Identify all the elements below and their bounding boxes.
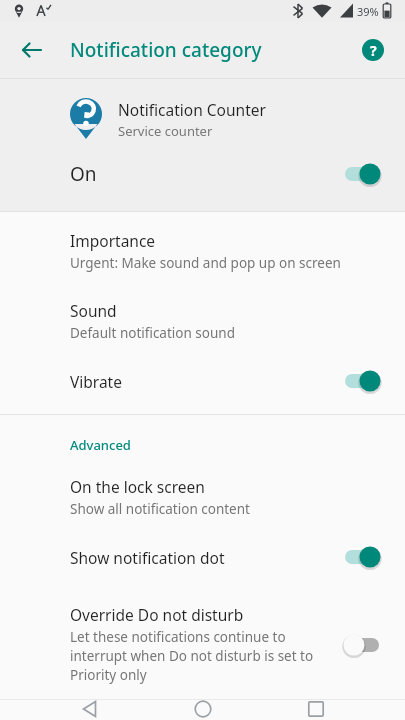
staticText: Override Do not disturb [70, 604, 244, 625]
staticText: Show all notification content [70, 500, 250, 518]
button[interactable]: Importance [0, 212, 405, 276]
staticText: Notification Counter [118, 99, 266, 120]
button[interactable]: On the lock screen [0, 462, 405, 522]
button[interactable]: On [0, 141, 405, 211]
button[interactable]: Sound [0, 276, 405, 346]
staticText: Vibrate [70, 371, 122, 392]
staticText: On the lock screen [70, 476, 205, 497]
button[interactable]: Vibrate [0, 346, 405, 414]
staticText: Default notification sound [70, 324, 235, 342]
staticText: 39% [357, 4, 379, 19]
button[interactable]: Back [12, 30, 52, 70]
button[interactable]: Advanced [0, 415, 405, 462]
staticText: Notification category [70, 37, 262, 63]
button[interactable]: Override Do not disturb [0, 588, 405, 699]
staticText: Advanced [70, 436, 131, 454]
staticText: On [70, 161, 97, 187]
staticText: interrupt when Do not disturb is set to [70, 647, 314, 665]
staticText: Service counter [118, 122, 213, 140]
staticText: Urgent: Make sound and pop up on screen [70, 254, 341, 272]
staticText: ? [370, 41, 377, 60]
staticText: Sound [70, 300, 117, 321]
staticText: Priority only [70, 666, 147, 684]
staticText: Let these notifications continue to [70, 628, 286, 646]
staticText: Importance [70, 230, 156, 251]
button[interactable]: Help [353, 30, 393, 70]
button[interactable]: Show notification dot [0, 522, 405, 588]
staticText: Show notification dot [70, 547, 225, 568]
